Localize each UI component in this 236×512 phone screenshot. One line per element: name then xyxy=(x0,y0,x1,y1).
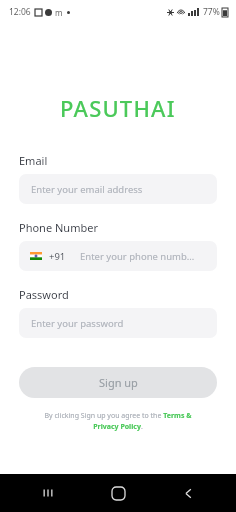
staticText: Sign up xyxy=(99,375,138,390)
staticText: Enter your phone numb… xyxy=(80,250,195,263)
button[interactable]: +91 xyxy=(19,241,217,271)
button[interactable]: Back xyxy=(166,474,210,512)
staticText: Enter your email address xyxy=(31,183,143,196)
staticText: +91 xyxy=(49,250,66,263)
button[interactable]: Home xyxy=(96,474,140,512)
button[interactable]: Recent apps xyxy=(26,474,70,512)
button[interactable]: Sign up xyxy=(19,367,217,398)
staticText: m xyxy=(55,7,63,18)
staticText: PASUTHAI xyxy=(60,93,176,123)
staticText: 77% xyxy=(203,6,220,18)
staticText: Password xyxy=(19,287,69,302)
staticText: Enter your password xyxy=(31,317,124,330)
staticText: Email xyxy=(19,153,48,168)
staticText: 12:06 xyxy=(9,6,31,18)
button[interactable]: Enter your password xyxy=(19,308,217,338)
button[interactable]: By clicking Sign up you agree to the Ter… xyxy=(39,411,197,431)
button[interactable]: Enter your email address xyxy=(19,174,217,204)
staticText: Phone Number xyxy=(19,220,98,235)
